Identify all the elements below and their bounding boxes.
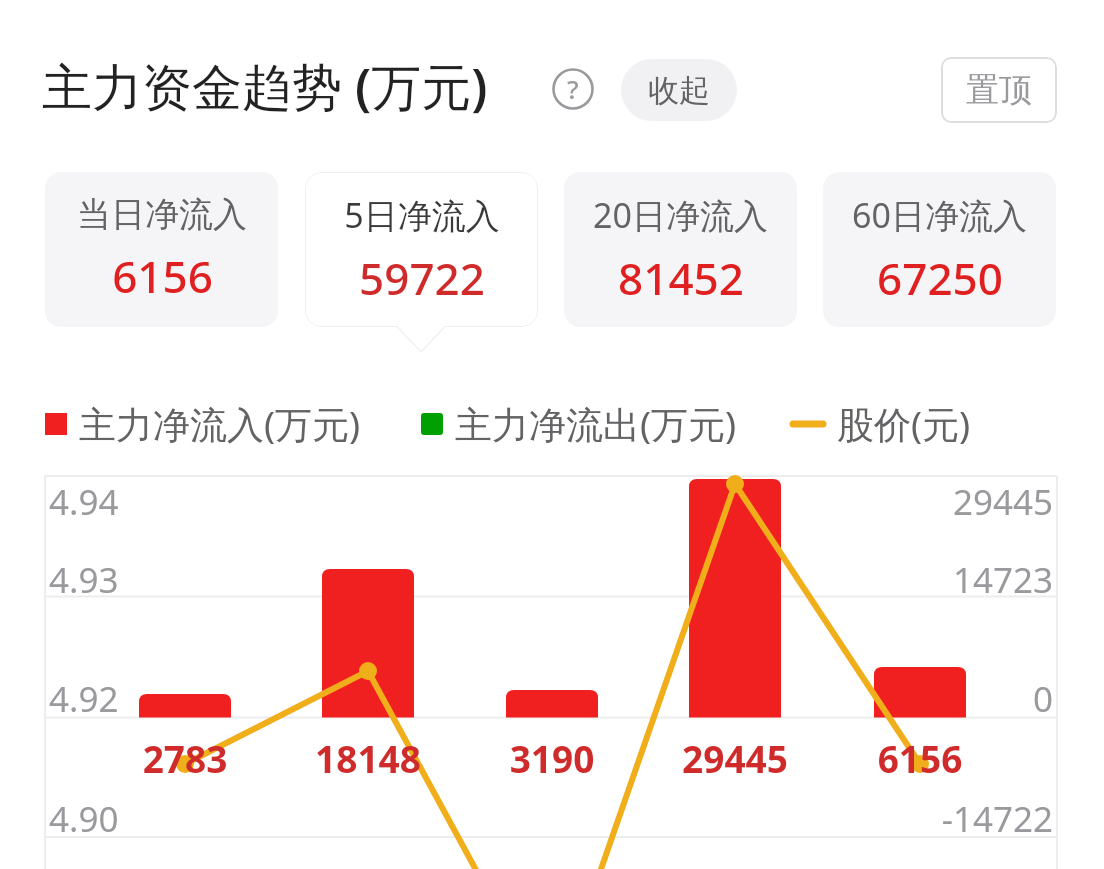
staticText: 主力资金趋势 (万元) — [42, 52, 488, 120]
staticText: 收起 — [648, 71, 710, 110]
staticText: 当日净流入 — [77, 193, 247, 236]
staticText: 4.90 — [49, 795, 119, 843]
staticText: 6156 — [112, 246, 213, 306]
staticText: 6156 — [810, 733, 1030, 783]
staticText: 置顶 — [966, 69, 1032, 111]
staticText: 4.94 — [49, 478, 119, 526]
staticText: 67250 — [877, 248, 1003, 308]
staticText: 14723 — [853, 556, 1053, 604]
button[interactable]: 当日净流入 — [45, 172, 278, 327]
staticText: -14722 — [853, 795, 1053, 843]
staticText: 主力净流出(万元) — [455, 398, 737, 449]
button[interactable]: 帮助 — [552, 68, 594, 110]
staticText: 5日净流入 — [344, 192, 500, 238]
button[interactable]: 5日净流入 — [305, 172, 538, 327]
staticText: 主力净流入(万元) — [79, 398, 361, 449]
staticText: 股价(元) — [837, 398, 971, 449]
staticText: ? — [567, 71, 579, 106]
staticText: 29445 — [625, 733, 845, 783]
staticText: 18148 — [258, 733, 478, 783]
button[interactable]: 60日净流入 — [823, 172, 1056, 327]
staticText: 2783 — [75, 733, 295, 783]
staticText: 29445 — [853, 478, 1053, 526]
staticText: 4.92 — [49, 675, 119, 723]
staticText: 0 — [853, 675, 1053, 723]
staticText: 4.93 — [49, 556, 119, 604]
button[interactable]: 置顶 — [941, 57, 1057, 123]
staticText: 81452 — [618, 248, 744, 308]
button[interactable]: 收起 — [621, 59, 737, 121]
staticText: 60日净流入 — [852, 192, 1027, 238]
staticText: 59722 — [359, 248, 485, 308]
button[interactable]: 20日净流入 — [564, 172, 797, 327]
staticText: 20日净流入 — [593, 192, 768, 238]
staticText: 3190 — [442, 733, 662, 783]
